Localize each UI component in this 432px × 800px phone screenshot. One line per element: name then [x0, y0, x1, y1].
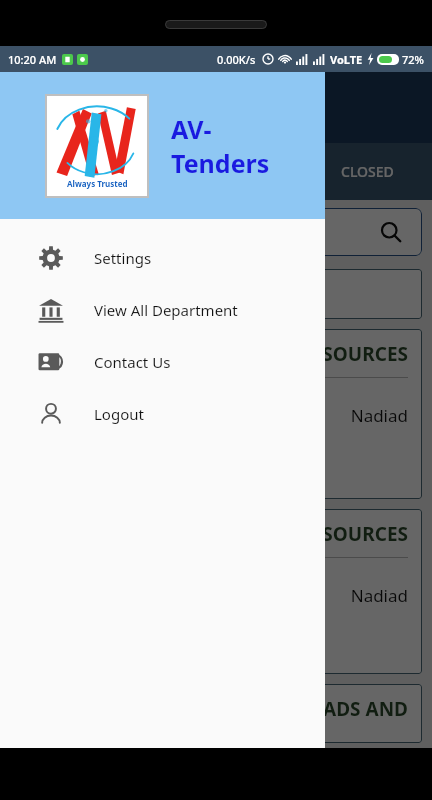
staticText: CLOSED: [341, 162, 394, 181]
staticText: Settings: [94, 248, 152, 268]
button[interactable]: Contact Us: [0, 336, 325, 388]
staticText: Contact Us: [94, 352, 171, 372]
staticText: Tenders: [171, 146, 270, 180]
staticText: WATER RESOURCES: [24, 521, 408, 547]
staticText: 10:20 AM: [8, 52, 57, 67]
staticText: 72%: [402, 52, 424, 67]
staticText: Always Trusted: [67, 178, 128, 189]
staticText: 0.00K/s: [217, 52, 256, 67]
staticText: Logout: [94, 404, 144, 424]
staticText: AV-: [171, 112, 212, 146]
staticText: VoLTE: [330, 52, 363, 67]
button[interactable]: Settings: [0, 232, 325, 284]
button[interactable]: Logout: [0, 388, 325, 440]
staticText: Nadiad: [24, 404, 408, 427]
staticText: WATER RESOURCES: [24, 341, 408, 367]
staticText: Nadiad: [24, 584, 408, 607]
staticText: View All Department: [94, 300, 238, 320]
button[interactable]: View All Department: [0, 284, 325, 336]
staticText: ROADS AND: [24, 696, 408, 722]
